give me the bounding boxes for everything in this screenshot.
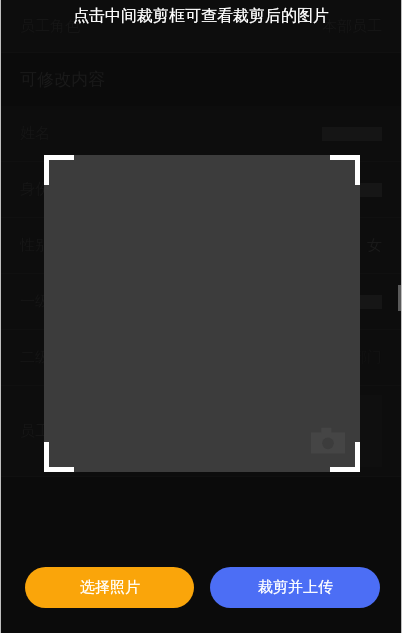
staticText: 请选择二级部门 — [277, 348, 382, 367]
button[interactable]: 身份证号 — [0, 162, 402, 217]
staticText: 身份证号 — [20, 180, 80, 199]
button[interactable]: 女 — [339, 236, 382, 255]
staticText: 性别 — [20, 236, 50, 255]
button[interactable]: 一级部门 — [0, 274, 402, 329]
button[interactable]: 姓名 — [0, 106, 402, 161]
staticText: 二级部门 — [20, 348, 80, 367]
staticText: 女 — [367, 236, 382, 255]
staticText: 一级部门 — [20, 292, 80, 311]
staticText: 本部员工 — [322, 17, 382, 36]
staticText: 可修改内容 — [20, 69, 105, 90]
button[interactable]: 员工照片 — [0, 386, 402, 476]
staticText: 选择照片 — [80, 578, 140, 597]
staticText: 点击中间裁剪框可查看裁剪后的图片 — [73, 6, 329, 26]
staticText: 员工角色 — [20, 17, 80, 36]
button[interactable]: 裁剪并上传 — [210, 567, 380, 608]
staticText: 裁剪并上传 — [258, 578, 333, 597]
button[interactable]: 查看裁剪后的图片 — [44, 155, 360, 472]
button[interactable]: 员工角色 — [0, 0, 402, 52]
button[interactable]: 选择照片 — [25, 567, 194, 608]
staticText: 员工照片 — [20, 422, 80, 441]
button[interactable]: 二级部门 — [0, 330, 402, 385]
